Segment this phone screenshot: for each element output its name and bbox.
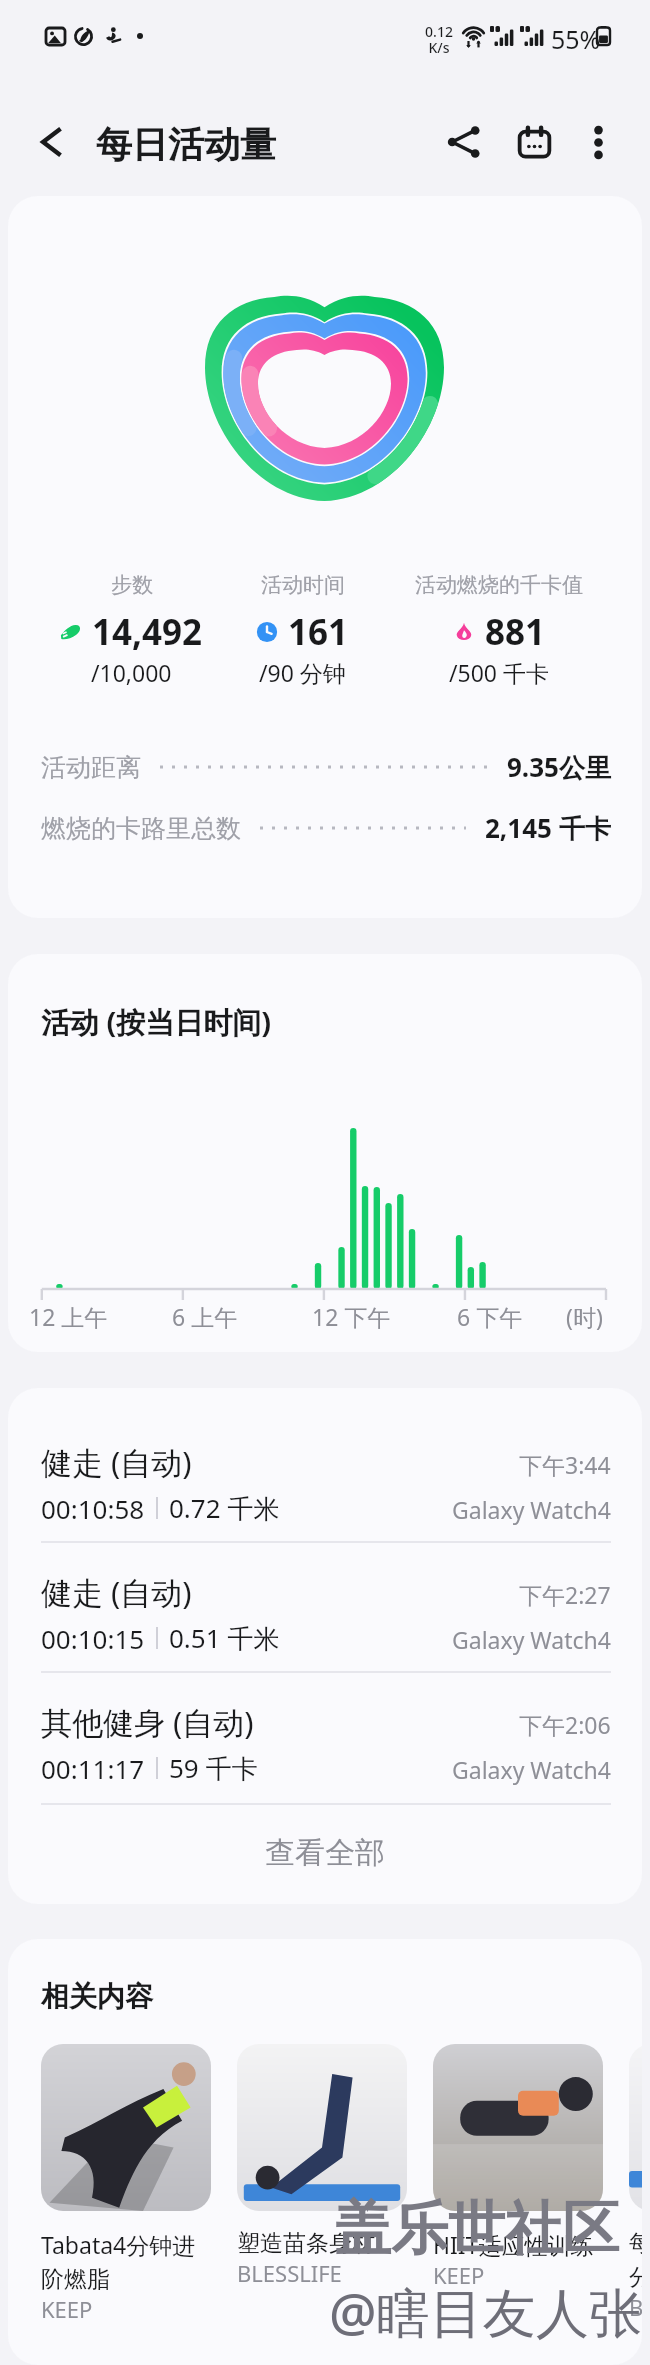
staticText: 59 千卡 xyxy=(169,1750,258,1786)
staticText: Galaxy Watch4 xyxy=(452,1494,611,1525)
staticText: Tabata4分钟进 阶燃脂 xyxy=(41,2229,196,2294)
staticText: 下午2:06 xyxy=(519,1709,611,1740)
staticText: 塑造苗条身材 xyxy=(237,2229,375,2258)
staticText: KEEP xyxy=(433,2260,485,2290)
staticText: /500 千卡 xyxy=(449,657,550,688)
staticText: 12 下午 xyxy=(312,1301,391,1332)
button[interactable]: 其他健身 (自动) xyxy=(8,1671,642,1801)
button[interactable]: Tabata4分钟进 阶燃脂 xyxy=(41,2044,231,2324)
staticText: 每日活动量 xyxy=(96,122,276,167)
staticText: Galaxy Watch4 xyxy=(452,1624,611,1655)
staticText: Galaxy Watch4 xyxy=(452,1754,611,1785)
staticText: 00:10:15 xyxy=(41,1621,145,1656)
staticText: 881 xyxy=(485,608,546,656)
staticText: 12 上午 xyxy=(29,1301,108,1332)
button[interactable]: 每天 分钟 xyxy=(629,2044,642,2322)
staticText: /90 分钟 xyxy=(259,657,346,688)
staticText: 相关内容 xyxy=(41,1979,153,2014)
staticText: 下午2:27 xyxy=(519,1579,611,1610)
button[interactable]: HIIT适应性训练 xyxy=(433,2044,623,2290)
staticText: BLESSLIFE xyxy=(629,2292,642,2322)
staticText: 2,145 千卡 xyxy=(485,810,611,846)
staticText: 00:10:58 xyxy=(41,1491,145,1526)
staticText: 161 xyxy=(288,608,349,656)
staticText: 活动时间 xyxy=(261,572,345,598)
staticText: 0.72 千米 xyxy=(169,1490,280,1526)
staticText: 00:11:17 xyxy=(41,1751,145,1786)
staticText: 其他健身 (自动) xyxy=(41,1701,254,1743)
button[interactable]: 查看全部 xyxy=(8,1803,642,1903)
staticText: 燃烧的卡路里总数 xyxy=(41,813,241,844)
staticText: 55% xyxy=(551,22,601,56)
staticText: 查看全部 xyxy=(265,1834,385,1872)
staticText: 步数 xyxy=(111,572,153,598)
button[interactable]: Calendar xyxy=(504,112,564,172)
staticText: 活动 (按当日时间) xyxy=(41,1002,272,1042)
staticText: (时) xyxy=(566,1301,603,1332)
staticText: 0.12 K/s xyxy=(425,22,453,57)
staticText: KEEP xyxy=(41,2294,93,2324)
staticText: 健走 (自动) xyxy=(41,1441,192,1483)
button[interactable]: 健走 (自动) xyxy=(8,1411,642,1541)
staticText: 9.35公里 xyxy=(507,749,611,785)
button[interactable]: Share xyxy=(434,112,494,172)
button[interactable]: 塑造苗条身材 xyxy=(237,2044,427,2288)
button[interactable]: More options xyxy=(568,112,628,172)
staticText: 活动距离 xyxy=(41,752,141,783)
button[interactable]: 健走 (自动) xyxy=(8,1541,642,1671)
staticText: 每天 分钟 xyxy=(629,2229,642,2292)
button[interactable]: Back xyxy=(21,112,81,172)
staticText: 6 下午 xyxy=(457,1301,523,1332)
staticText: /10,000 xyxy=(91,657,172,688)
staticText: HIIT适应性训练 xyxy=(433,2229,594,2260)
staticText: 下午3:44 xyxy=(519,1449,611,1480)
staticText: 14,492 xyxy=(92,608,203,656)
staticText: 盖乐世社区 xyxy=(334,2193,619,2265)
staticText: 健走 (自动) xyxy=(41,1571,192,1613)
staticText: @瞎目友人张 xyxy=(329,2275,642,2347)
staticText: 6 上午 xyxy=(172,1301,238,1332)
staticText: 活动燃烧的千卡值 xyxy=(415,572,583,598)
staticText: BLESSLIFE xyxy=(237,2258,342,2288)
staticText: 0.51 千米 xyxy=(169,1620,280,1656)
